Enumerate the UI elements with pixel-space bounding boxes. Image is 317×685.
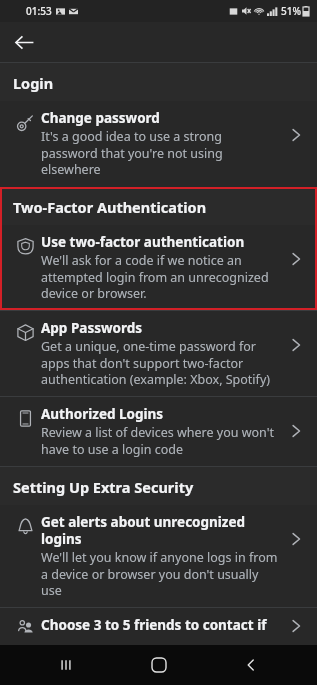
staticText: Login <box>13 73 54 93</box>
button[interactable]: Back <box>6 24 42 60</box>
staticText: Choose 3 to 5 friends to contact if you … <box>41 616 279 636</box>
staticText: We'll ask for a code if we notice an att… <box>41 252 279 301</box>
staticText: App Passwords <box>41 319 143 337</box>
staticText: Get alerts about unrecognized logins <box>41 513 279 548</box>
button[interactable]: App Passwords <box>0 311 317 396</box>
button[interactable]: Change password <box>0 101 317 186</box>
staticText: We'll let you know if anyone logs in fro… <box>41 549 279 598</box>
button[interactable]: Use two-factor authentication <box>0 225 317 310</box>
staticText: Use two-factor authentication <box>41 233 245 251</box>
button[interactable]: Recent apps <box>39 645 93 685</box>
staticText: Two-Factor Authentication <box>13 197 207 217</box>
staticText: Change password <box>41 109 160 127</box>
staticText: Get a unique, one-time password for apps… <box>41 338 279 387</box>
button[interactable]: Home <box>132 645 186 685</box>
staticText: 51% <box>281 4 301 18</box>
staticText: It's a good idea to use a strong passwor… <box>41 128 279 177</box>
staticText: 01:53 <box>26 4 52 18</box>
staticText: Setting Up Extra Security <box>13 477 194 497</box>
staticText: Review a list of devices where you won't… <box>41 424 279 457</box>
staticText: Authorized Logins <box>41 405 164 423</box>
button[interactable]: Authorized Logins <box>0 397 317 466</box>
button[interactable]: Choose 3 to 5 friends to contact if you … <box>0 608 317 645</box>
button[interactable]: Get alerts about unrecognized logins <box>0 505 317 607</box>
button[interactable]: Back <box>224 645 278 685</box>
